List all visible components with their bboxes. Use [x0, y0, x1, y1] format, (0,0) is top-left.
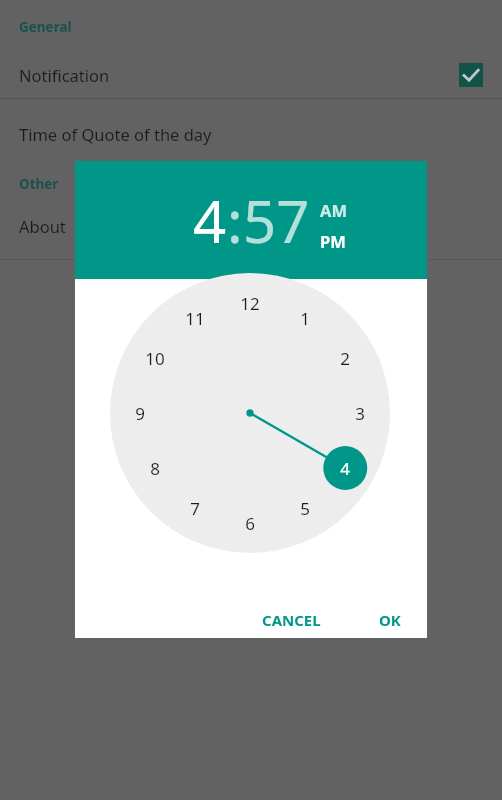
staticText: 8 — [150, 457, 160, 480]
staticText: 4 — [340, 457, 350, 480]
button[interactable]: 57 — [243, 181, 310, 260]
staticText: 57 — [243, 181, 310, 260]
staticText: 12 — [240, 292, 260, 315]
button[interactable]: About — [0, 209, 502, 243]
staticText: Notification — [19, 64, 110, 86]
staticText: 6 — [245, 512, 255, 535]
staticText: About — [19, 215, 66, 237]
staticText: PM — [320, 230, 346, 252]
button[interactable]: AM — [320, 199, 347, 221]
staticText: 1 — [300, 307, 310, 330]
staticText: 9 — [135, 402, 145, 425]
button[interactable]: 4 — [193, 181, 227, 260]
button[interactable]: Notification — [0, 52, 502, 98]
staticText: CANCEL — [262, 610, 321, 630]
button[interactable]: CANCEL — [250, 602, 333, 638]
staticText: General — [19, 18, 72, 36]
staticText: 4 — [193, 181, 227, 260]
button[interactable]: Time of Quote of the day — [0, 115, 502, 153]
staticText: AM — [320, 199, 347, 221]
button[interactable]: Notification checkbox — [459, 63, 483, 87]
staticText: OK — [379, 610, 401, 630]
button[interactable]: PM — [320, 230, 346, 252]
staticText: 10 — [145, 347, 165, 370]
staticText: 2 — [340, 347, 350, 370]
staticText: 3 — [355, 402, 365, 425]
staticText: : — [227, 181, 243, 260]
staticText: Time of Quote of the day — [19, 123, 212, 145]
button[interactable]: Clock face, select hour — [110, 273, 390, 553]
button[interactable]: OK — [367, 602, 413, 638]
staticText: 7 — [190, 497, 200, 520]
staticText: 11 — [185, 307, 205, 330]
staticText: 5 — [300, 497, 310, 520]
staticText: Other — [19, 175, 59, 193]
